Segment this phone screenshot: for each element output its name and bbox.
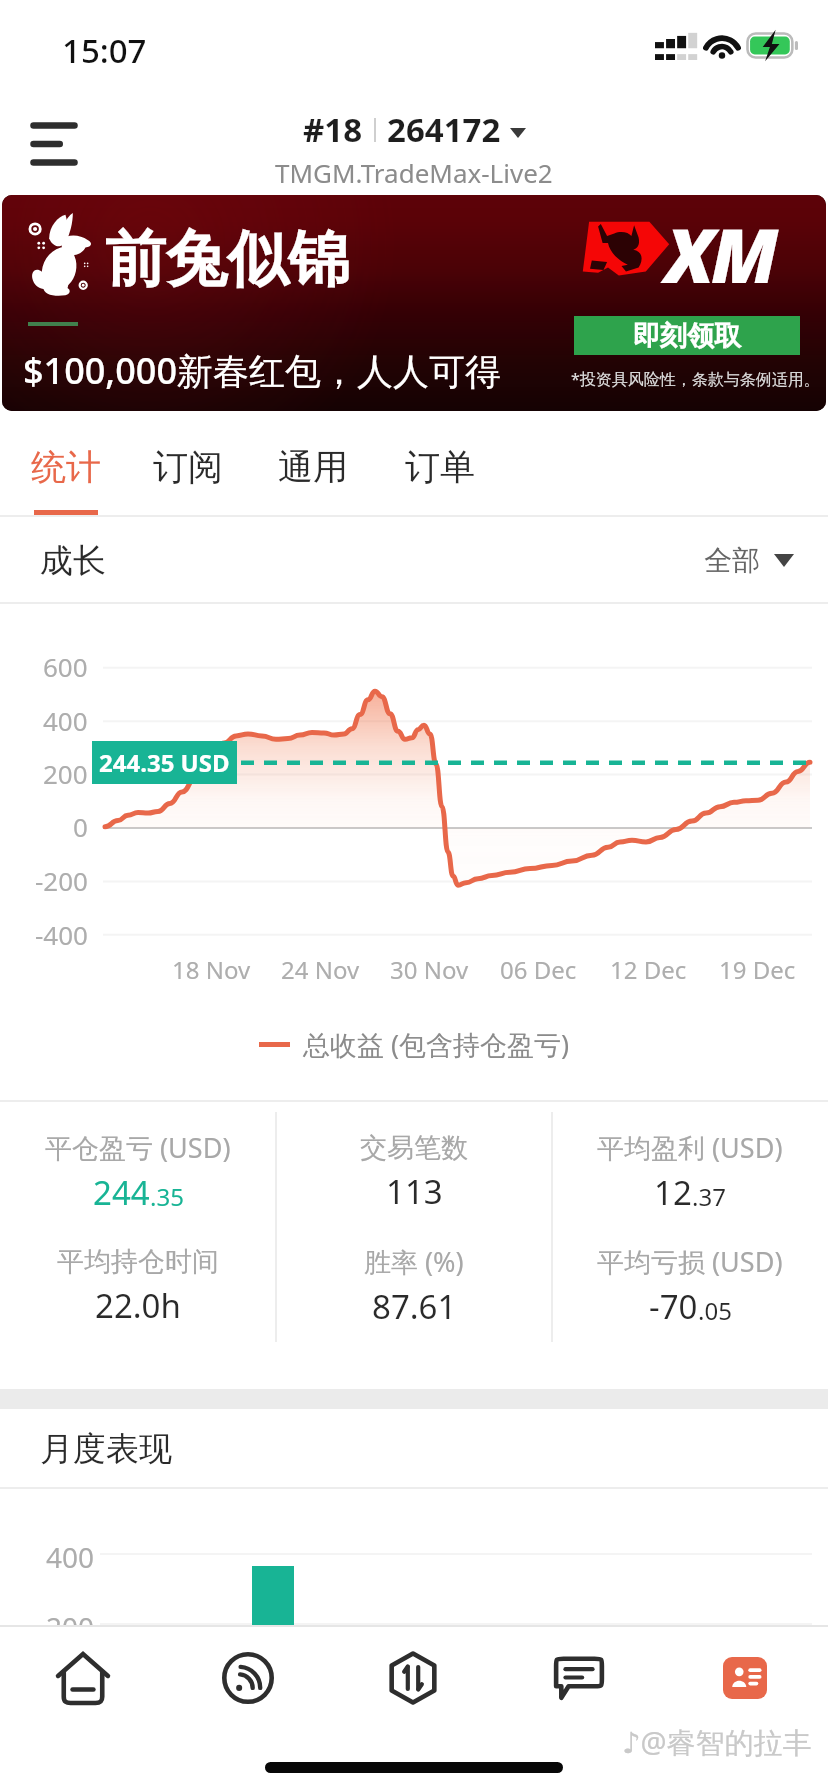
staticText: XM xyxy=(665,204,776,305)
staticText: 通用 xyxy=(278,445,348,489)
button[interactable]: 订单 xyxy=(384,411,496,517)
staticText: 成长 xyxy=(40,540,106,582)
staticText: ♪@睿智的拉丰 xyxy=(622,1722,812,1762)
staticText: 0 xyxy=(73,809,88,844)
button[interactable]: 平均盈利 (USD) xyxy=(552,1116,828,1228)
staticText: 19 Dec xyxy=(719,953,796,986)
button[interactable]: Signals xyxy=(165,1625,330,1731)
staticText: 600 xyxy=(43,649,88,684)
staticText: 即刻领取 xyxy=(633,319,741,353)
staticText: -70 xyxy=(649,1284,698,1329)
staticText: *投资具风险性，条款与条例适用。 xyxy=(571,368,820,390)
staticText: 前兔似锦 xyxy=(105,221,349,298)
staticText: 总收益 (包含持仓盈亏) xyxy=(303,1026,570,1063)
staticText: 244.35 USD xyxy=(99,746,230,779)
button[interactable]: 交易笔数 xyxy=(276,1116,552,1228)
staticText: 平均持仓时间 xyxy=(57,1245,219,1279)
staticText: .35 xyxy=(150,1180,184,1213)
button[interactable]: Profile xyxy=(662,1625,828,1731)
staticText: 400 xyxy=(43,703,88,738)
staticText: 200 xyxy=(46,1608,95,1646)
staticText: 12 Dec xyxy=(610,953,687,986)
staticText: 12 xyxy=(654,1170,692,1215)
staticText: #18 xyxy=(303,107,363,152)
staticText: 订单 xyxy=(405,445,475,489)
staticText: 胜率 (%) xyxy=(364,1243,464,1280)
staticText: 平仓盈亏 (USD) xyxy=(45,1129,231,1166)
staticText: 244 xyxy=(93,1170,150,1215)
staticText: 06 Dec xyxy=(500,953,577,986)
button[interactable]: Messages xyxy=(496,1625,662,1731)
button[interactable]: 统计 xyxy=(10,411,122,517)
staticText: .37 xyxy=(692,1180,726,1213)
button[interactable]: 平均亏损 (USD) xyxy=(552,1230,828,1342)
staticText: 15:07 xyxy=(62,28,147,73)
staticText: 全部 xyxy=(704,543,760,578)
staticText: 200 xyxy=(43,756,88,791)
button[interactable]: Trade xyxy=(330,1625,496,1731)
button[interactable]: 前兔似锦 xyxy=(2,195,826,411)
button[interactable]: Home xyxy=(0,1625,165,1731)
button[interactable]: 平仓盈亏 (USD) xyxy=(0,1116,276,1228)
button[interactable]: 平均持仓时间 xyxy=(0,1230,276,1342)
staticText: 统计 xyxy=(31,445,101,489)
button[interactable]: 胜率 (%) xyxy=(276,1230,552,1342)
staticText: 22.0h xyxy=(95,1283,181,1328)
button[interactable]: Menu xyxy=(18,110,90,178)
staticText: -200 xyxy=(35,863,88,898)
staticText: 264172 xyxy=(387,107,501,152)
staticText: -400 xyxy=(35,917,88,952)
staticText: 交易笔数 xyxy=(360,1131,468,1165)
button[interactable]: 即刻领取 xyxy=(574,316,800,355)
staticText: TMGM.TradeMax-Live2 xyxy=(275,155,553,190)
staticText: 400 xyxy=(46,1538,95,1576)
button[interactable]: #18 xyxy=(275,107,553,190)
staticText: 30 Nov xyxy=(390,953,469,986)
staticText: 平均亏损 (USD) xyxy=(597,1243,783,1280)
staticText: 113 xyxy=(386,1169,443,1214)
staticText: 平均盈利 (USD) xyxy=(597,1129,783,1166)
staticText: .05 xyxy=(698,1294,732,1327)
staticText: 24 Nov xyxy=(281,953,360,986)
staticText: 月度表现 xyxy=(40,1428,172,1470)
staticText: 87.61 xyxy=(372,1284,457,1329)
button[interactable]: 通用 xyxy=(257,411,369,517)
staticText: 订阅 xyxy=(153,445,223,489)
staticText: $100,000新春红包，人人可得 xyxy=(23,346,501,395)
button[interactable]: 全部 xyxy=(704,543,794,578)
button[interactable]: 订阅 xyxy=(132,411,244,517)
staticText: 18 Nov xyxy=(172,953,251,986)
